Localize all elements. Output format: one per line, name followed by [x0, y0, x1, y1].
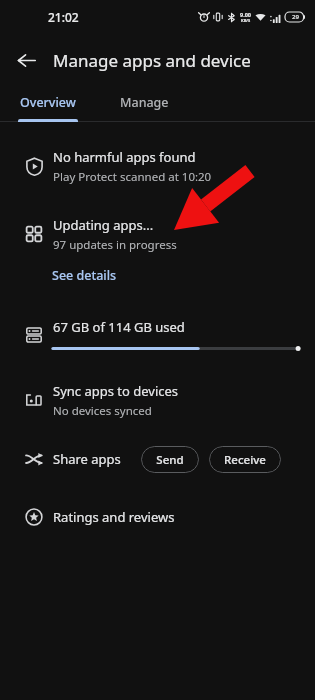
- staticText: Manage: [120, 94, 169, 111]
- staticText: Ratings and reviews: [53, 508, 175, 526]
- staticText: Send: [156, 452, 184, 468]
- button[interactable]: Manage: [96, 86, 192, 119]
- staticText: 21:02: [48, 9, 79, 25]
- staticText: Receive: [224, 452, 266, 468]
- button[interactable]: 67 GB of 114 GB used: [0, 308, 315, 362]
- staticText: Share apps: [53, 450, 121, 468]
- button[interactable]: Send: [141, 446, 199, 473]
- button[interactable]: No harmful apps found: [0, 140, 315, 192]
- button[interactable]: Back: [6, 40, 46, 80]
- staticText: Manage apps and device: [53, 49, 251, 72]
- staticText: See details: [52, 267, 117, 284]
- button[interactable]: Sync apps to devices: [0, 374, 315, 426]
- button[interactable]: Ratings and reviews: [0, 496, 315, 538]
- staticText: Overview: [20, 94, 76, 111]
- staticText: Sync apps to devices: [53, 382, 179, 400]
- button[interactable]: Overview: [0, 86, 96, 119]
- staticText: KB/S: [241, 18, 251, 23]
- staticText: 67 GB of 114 GB used: [53, 318, 185, 336]
- staticText: 9.00: [240, 11, 251, 18]
- staticText: 29: [292, 13, 299, 21]
- button[interactable]: See details: [52, 260, 315, 290]
- button[interactable]: Updating apps...: [0, 208, 315, 260]
- staticText: Updating apps...: [53, 216, 154, 234]
- staticText: 97 updates in progress: [53, 237, 177, 253]
- button[interactable]: Receive: [209, 446, 281, 473]
- staticText: No harmful apps found: [53, 148, 196, 166]
- staticText: Play Protect scanned at 10:20: [53, 169, 212, 185]
- staticText: No devices synced: [53, 403, 152, 419]
